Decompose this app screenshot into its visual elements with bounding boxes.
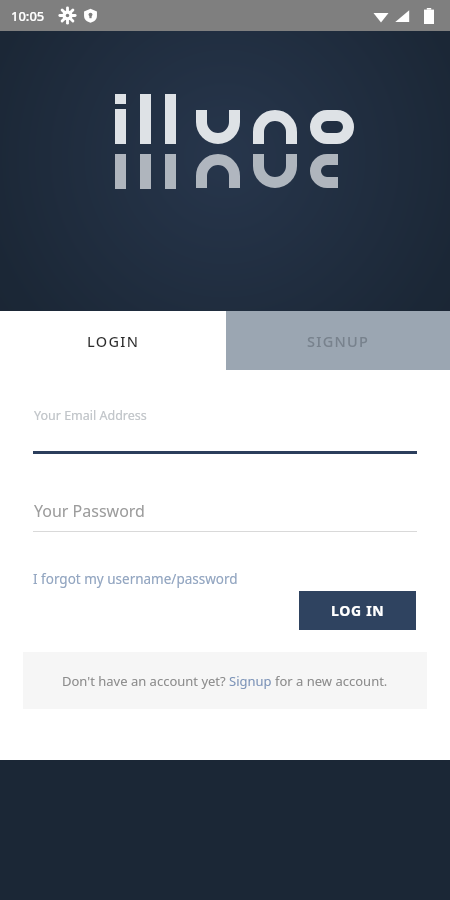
staticText: LOGIN: [87, 331, 140, 351]
other: Settings: [60, 8, 75, 23]
other: illuno logo: [115, 94, 338, 189]
staticText: Don't have an account yet? Signup for a …: [62, 672, 388, 690]
other: Security: [83, 8, 98, 23]
button[interactable]: SIGNUP: [226, 311, 450, 370]
staticText: Your Password: [34, 500, 145, 522]
staticText: 10:05: [11, 7, 45, 25]
staticText: SIGNUP: [307, 331, 370, 351]
staticText: LOG IN: [331, 601, 385, 620]
button[interactable]: LOGIN: [0, 311, 226, 370]
staticText: Your Email Address: [34, 407, 147, 424]
button[interactable]: Don't have an account yet? Signup for a …: [23, 652, 427, 709]
button[interactable]: I forgot my username/password: [33, 570, 238, 588]
button[interactable]: LOG IN: [299, 591, 416, 630]
